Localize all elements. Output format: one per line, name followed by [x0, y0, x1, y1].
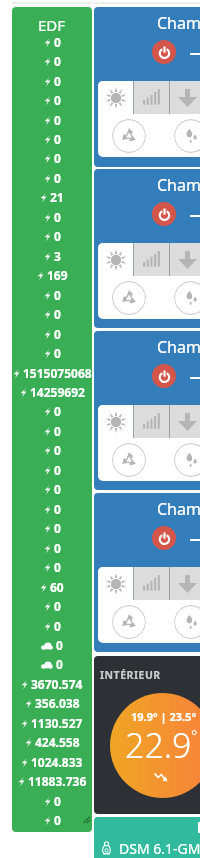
staticText: 0 — [54, 170, 61, 186]
staticText: ° — [191, 725, 198, 745]
staticText: 0 — [54, 481, 61, 497]
staticText: 1130.527 — [31, 715, 83, 731]
staticText: 0 — [54, 618, 61, 634]
button[interactable]: Humidity — [174, 605, 200, 639]
button[interactable]: Sun — [98, 567, 133, 600]
staticText: 19.9° | 23.5° — [131, 709, 197, 724]
staticText: 60 — [50, 579, 64, 595]
staticText: 11883.736 — [28, 773, 87, 789]
button[interactable]: Recycle — [112, 281, 146, 315]
staticText: 0 — [54, 228, 61, 244]
staticText: 0 — [54, 34, 61, 50]
staticText: 0 — [54, 462, 61, 478]
staticText: Chambre — [157, 498, 200, 520]
button[interactable]: Down — [170, 81, 200, 114]
button[interactable]: Statistics — [134, 81, 169, 114]
staticText: 424.558 — [35, 734, 80, 750]
staticText: DSM 6.1-GM — [119, 839, 200, 858]
staticText: 0 — [54, 287, 61, 303]
staticText: 0 — [54, 812, 61, 828]
button[interactable]: Sun — [98, 81, 133, 114]
staticText: 0 — [54, 150, 61, 166]
button[interactable]: Recycle — [112, 605, 146, 639]
staticText: 0 — [54, 540, 61, 556]
staticText: 0 — [54, 423, 61, 439]
button[interactable]: Down — [170, 567, 200, 600]
staticText: Chambre — [157, 12, 200, 34]
staticText: 3 — [54, 248, 61, 264]
staticText: 0 — [54, 598, 61, 614]
staticText: 0 — [54, 442, 61, 458]
button[interactable]: Sun — [98, 243, 133, 276]
button[interactable]: Humidity — [174, 119, 200, 153]
staticText: Chambre — [157, 336, 200, 358]
button[interactable]: Chambre — [94, 7, 200, 167]
staticText: 0 — [54, 73, 61, 89]
staticText: 0 — [54, 520, 61, 536]
button[interactable]: Humidity — [174, 281, 200, 315]
staticText: 356.038 — [35, 695, 80, 711]
staticText: 0 — [54, 793, 61, 809]
button[interactable]: Chambre — [94, 331, 200, 490]
button[interactable]: Power toggle — [152, 526, 176, 550]
button[interactable]: Down — [170, 243, 200, 276]
staticText: 0 — [54, 53, 61, 69]
staticText: EDF — [38, 15, 66, 35]
button[interactable]: Humidity — [174, 443, 200, 477]
staticText: 0 — [56, 656, 63, 672]
button[interactable]: Recycle — [112, 119, 146, 153]
staticText: 0 — [54, 326, 61, 342]
staticText: 0 — [54, 403, 61, 419]
staticText: 0 — [54, 131, 61, 147]
staticText: 0 — [54, 112, 61, 128]
button[interactable]: Recycle — [112, 443, 146, 477]
staticText: 1024.833 — [31, 754, 83, 770]
staticText: 0 — [54, 209, 61, 225]
button[interactable]: Chambre — [94, 493, 200, 652]
staticText: 169 — [47, 267, 68, 283]
staticText: Chambre — [157, 174, 200, 196]
button[interactable]: Power toggle — [152, 364, 176, 388]
staticText: 3670.574 — [31, 676, 83, 692]
staticText: 22.9 — [125, 722, 192, 768]
button[interactable]: DSM 6.1-GM — [94, 817, 200, 858]
button[interactable]: Statistics — [134, 405, 169, 438]
button[interactable]: Sun — [98, 405, 133, 438]
staticText: 0 — [54, 501, 61, 517]
button[interactable]: Chambre — [94, 169, 200, 328]
button[interactable]: INTÉRIEUR — [94, 656, 200, 814]
staticText: 1515075068 — [23, 365, 92, 381]
staticText: 21 — [50, 189, 64, 205]
button[interactable]: Power toggle — [152, 202, 176, 226]
button[interactable]: Statistics — [134, 567, 169, 600]
button[interactable]: Down — [170, 405, 200, 438]
button[interactable]: EDF — [12, 7, 92, 832]
staticText: 0 — [54, 559, 61, 575]
staticText: 0 — [54, 92, 61, 108]
staticText: 0 — [54, 306, 61, 322]
button[interactable]: Statistics — [134, 243, 169, 276]
staticText: 0 — [54, 345, 61, 361]
button[interactable]: Power toggle — [152, 40, 176, 64]
staticText: INTÉRIEUR — [100, 668, 161, 682]
staticText: 0 — [56, 637, 63, 653]
staticText: 14259692 — [30, 384, 85, 400]
